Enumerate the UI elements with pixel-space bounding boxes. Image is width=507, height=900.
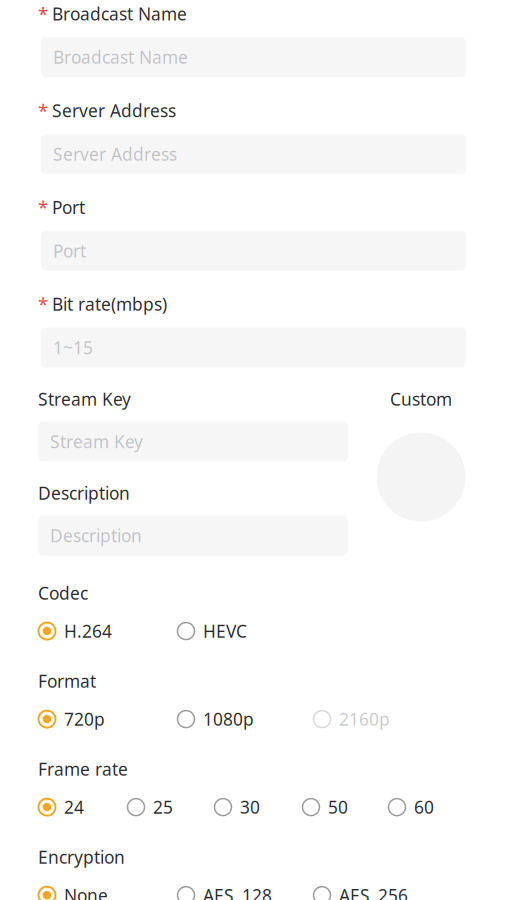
staticText: Server Address (52, 99, 176, 122)
button[interactable]: 720p (38, 708, 105, 731)
staticText: Description (38, 481, 130, 504)
staticText: 25 (153, 796, 173, 819)
staticText: 24 (64, 796, 84, 819)
staticText: 30 (240, 796, 260, 819)
staticText: AES_256 (339, 884, 408, 900)
staticText: Port (52, 196, 85, 219)
staticText: Broadcast Name (53, 46, 188, 69)
staticText: * (38, 98, 48, 123)
staticText: * (38, 195, 48, 220)
button[interactable]: None (38, 884, 108, 900)
button[interactable]: 24 (38, 796, 84, 819)
button[interactable]: 25 (127, 796, 173, 819)
staticText: 50 (328, 796, 348, 819)
staticText: 60 (414, 796, 434, 819)
button[interactable]: Stream Key (38, 421, 348, 461)
staticText: Frame rate (38, 758, 128, 781)
button[interactable]: 1080p (177, 708, 254, 731)
button[interactable]: 30 (214, 796, 260, 819)
staticText: H.264 (64, 619, 112, 642)
staticText: Port (53, 239, 86, 262)
staticText: * (38, 292, 48, 316)
button[interactable]: 50 (302, 796, 348, 819)
staticText: Encryption (38, 846, 125, 869)
button[interactable]: HEVC (177, 619, 247, 642)
staticText: * (38, 1, 48, 26)
button[interactable]: Description (38, 515, 348, 555)
staticText: Server Address (53, 142, 177, 165)
button[interactable]: 1~15 (41, 327, 466, 367)
staticText: Codec (38, 581, 88, 604)
button[interactable]: 2160p (313, 708, 390, 731)
staticText: Broadcast Name (52, 2, 187, 25)
staticText: AES_128 (203, 884, 272, 900)
staticText: HEVC (203, 619, 247, 642)
staticText: Stream Key (50, 430, 143, 453)
staticText: Format (38, 670, 96, 693)
button[interactable]: 60 (388, 796, 434, 819)
button[interactable]: AES_256 (313, 884, 408, 900)
button[interactable]: Broadcast Name (41, 37, 466, 77)
staticText: Custom (390, 387, 452, 410)
button[interactable]: Port (41, 231, 466, 271)
staticText: 2160p (339, 708, 390, 731)
staticText: Bit rate(mbps) (52, 293, 167, 316)
button[interactable]: Server Address (41, 134, 466, 174)
staticText: None (64, 884, 108, 900)
staticText: Stream Key (38, 387, 131, 410)
staticText: 1~15 (53, 336, 93, 359)
staticText: 720p (64, 708, 105, 731)
staticText: Description (50, 524, 142, 547)
button[interactable]: AES_128 (177, 884, 272, 900)
button[interactable]: H.264 (38, 619, 112, 642)
button[interactable]: Custom image (376, 432, 465, 521)
staticText: 1080p (203, 708, 254, 731)
